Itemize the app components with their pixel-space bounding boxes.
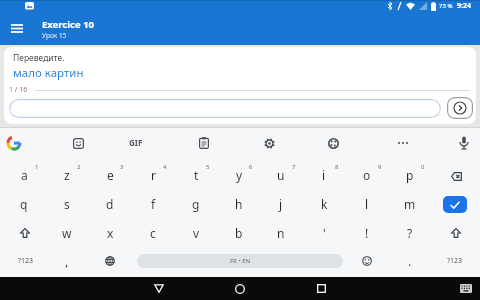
button[interactable]: , xyxy=(51,248,83,274)
staticText: 5 xyxy=(206,163,210,171)
button[interactable] xyxy=(447,97,473,119)
staticText: z xyxy=(64,167,70,183)
staticText: f xyxy=(151,196,156,212)
staticText: b xyxy=(235,225,243,241)
button[interactable]: x xyxy=(94,220,126,246)
staticText: x xyxy=(107,225,114,241)
staticText: 9:24 xyxy=(457,1,471,11)
button[interactable]: d xyxy=(94,191,126,217)
button[interactable]: q xyxy=(8,191,40,217)
button[interactable]: j xyxy=(265,191,297,217)
staticText: 9 xyxy=(378,163,382,171)
button[interactable] xyxy=(11,220,39,246)
staticText: p xyxy=(406,167,414,183)
button[interactable]: i xyxy=(308,162,340,188)
button[interactable]: ? xyxy=(394,220,426,246)
staticText: ' xyxy=(323,225,326,241)
button[interactable] xyxy=(148,277,170,300)
staticText: g xyxy=(192,196,200,212)
button[interactable]: ' xyxy=(308,220,340,246)
button[interactable] xyxy=(259,133,279,153)
staticText: ?123 xyxy=(18,256,34,266)
staticText: h xyxy=(235,196,243,212)
button[interactable]: b xyxy=(223,220,255,246)
button[interactable]: e xyxy=(94,162,126,188)
button[interactable]: f xyxy=(137,191,169,217)
staticText: q xyxy=(20,196,28,212)
button[interactable] xyxy=(442,220,470,246)
button[interactable]: ! xyxy=(351,220,383,246)
button[interactable]: y xyxy=(223,162,255,188)
button[interactable]: c xyxy=(137,220,169,246)
staticText: 7 xyxy=(292,163,296,171)
button[interactable]: k xyxy=(308,191,340,217)
staticText: d xyxy=(106,196,114,212)
button[interactable]: l xyxy=(351,191,383,217)
staticText: t xyxy=(194,167,199,183)
button[interactable]: s xyxy=(51,191,83,217)
button[interactable]: r xyxy=(137,162,169,188)
button[interactable] xyxy=(9,99,441,118)
staticText: a xyxy=(21,167,28,183)
button[interactable]: a xyxy=(8,162,40,188)
staticText: 6 xyxy=(249,163,253,171)
button[interactable] xyxy=(4,133,24,153)
staticText: m xyxy=(404,196,416,212)
button[interactable]: m xyxy=(394,191,426,217)
staticText: j xyxy=(279,196,283,212)
button[interactable]: ?123 xyxy=(10,248,42,274)
button[interactable]: GIF xyxy=(129,137,143,148)
button[interactable] xyxy=(68,133,88,153)
staticText: 2 xyxy=(77,163,81,171)
button[interactable] xyxy=(353,248,381,274)
staticText: i xyxy=(322,167,326,183)
staticText: l xyxy=(365,196,369,212)
staticText: GIF xyxy=(129,137,143,148)
staticText: 73 % xyxy=(439,2,453,10)
button[interactable]: v xyxy=(180,220,212,246)
staticText: Exercice 10 xyxy=(42,18,95,31)
staticText: FR • EN xyxy=(230,257,251,265)
staticText: 3 xyxy=(120,163,124,171)
button[interactable]: p xyxy=(394,162,426,188)
staticText: r xyxy=(151,167,156,183)
button[interactable]: h xyxy=(223,191,255,217)
button[interactable] xyxy=(323,133,343,153)
staticText: n xyxy=(277,225,285,241)
staticText: c xyxy=(150,225,156,241)
button[interactable]: мало картин xyxy=(13,65,84,81)
button[interactable] xyxy=(0,12,33,45)
button[interactable]: . xyxy=(394,248,426,274)
staticText: Урок 15 xyxy=(42,31,67,40)
staticText: k xyxy=(321,196,328,212)
button[interactable] xyxy=(393,133,413,153)
button[interactable] xyxy=(310,277,332,300)
button[interactable] xyxy=(96,248,124,274)
button[interactable]: o xyxy=(351,162,383,188)
button[interactable]: w xyxy=(51,220,83,246)
button[interactable] xyxy=(194,133,214,153)
button[interactable]: z xyxy=(51,162,83,188)
button[interactable] xyxy=(454,133,474,153)
staticText: 0 xyxy=(421,163,425,171)
staticText: 8 xyxy=(335,163,339,171)
staticText: ? xyxy=(407,225,413,241)
staticText: w xyxy=(62,225,72,241)
staticText: u xyxy=(277,167,285,183)
button[interactable]: g xyxy=(180,191,212,217)
button[interactable]: n xyxy=(265,220,297,246)
staticText: v xyxy=(193,225,200,241)
button[interactable] xyxy=(442,163,470,189)
button[interactable] xyxy=(229,277,251,300)
button[interactable]: u xyxy=(265,162,297,188)
staticText: e xyxy=(107,167,114,183)
button[interactable]: t xyxy=(180,162,212,188)
button[interactable] xyxy=(460,284,472,293)
button[interactable] xyxy=(443,196,467,213)
staticText: ! xyxy=(365,225,369,241)
staticText: ?123 xyxy=(447,256,463,266)
staticText: 1 / 16 xyxy=(9,85,28,95)
staticText: 1 xyxy=(35,163,39,171)
button[interactable]: ?123 xyxy=(439,248,471,274)
button[interactable]: FR • EN xyxy=(137,254,343,268)
